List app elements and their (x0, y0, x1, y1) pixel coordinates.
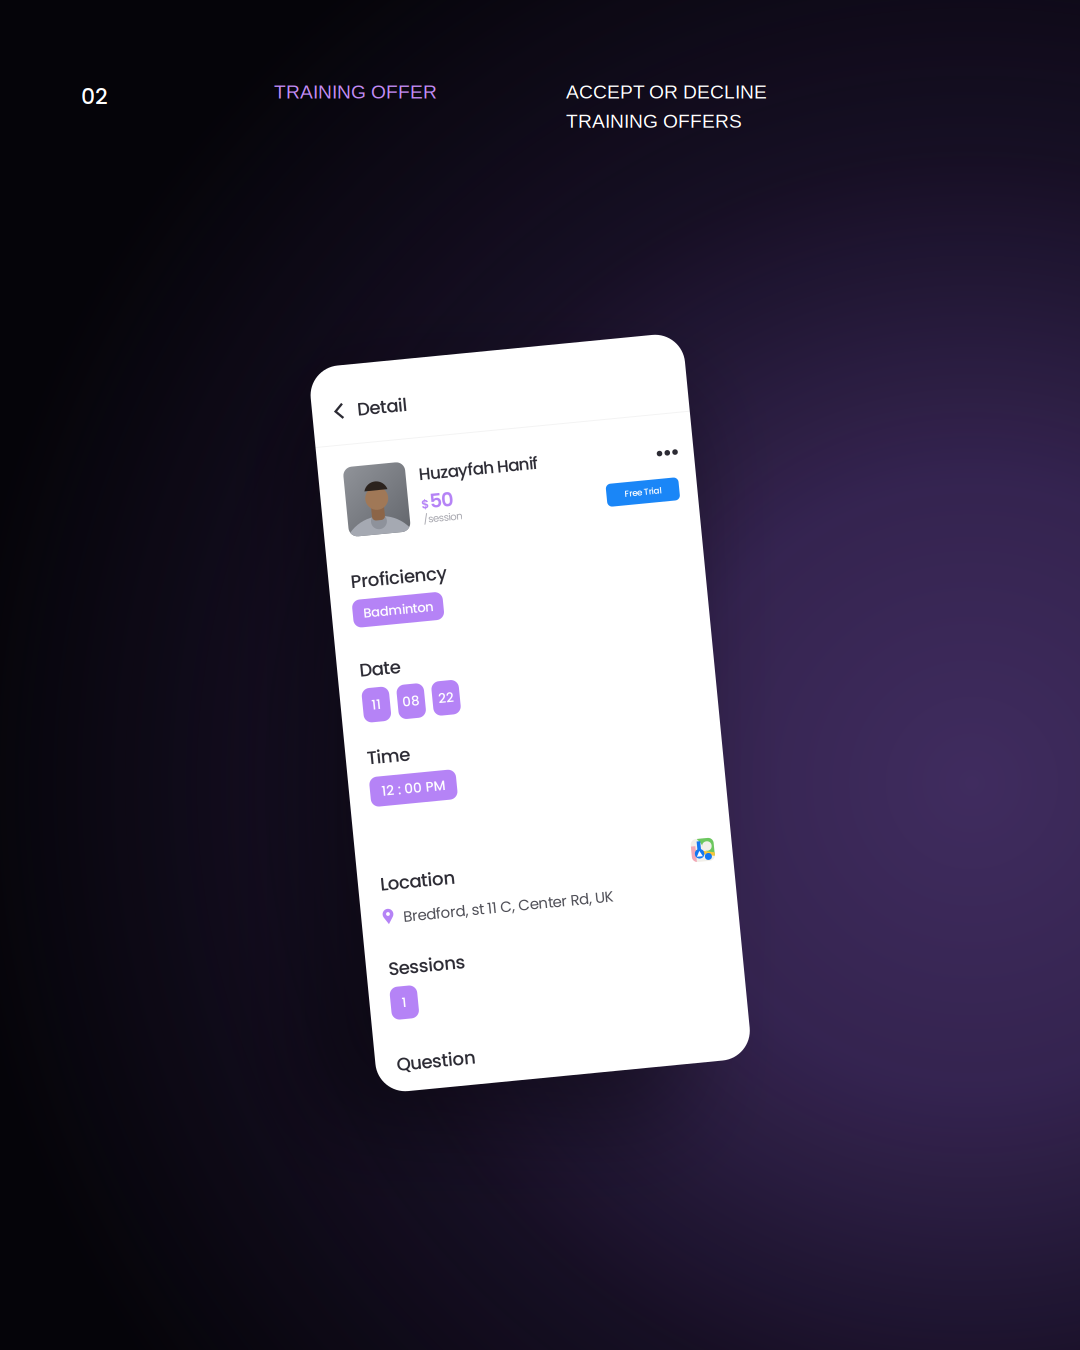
button[interactable]: Free Trial (627, 492, 700, 515)
button[interactable]: Open in Maps (677, 854, 700, 877)
staticText: Free Trial (645, 498, 682, 510)
staticText: 02 (81, 81, 108, 112)
staticText: 08 (404, 680, 422, 699)
staticText: Detail (387, 381, 438, 407)
button[interactable]: 22 (434, 672, 462, 707)
button[interactable]: 12 : 00 PM (363, 761, 450, 791)
button[interactable]: More options (675, 458, 708, 476)
staticText: Location (364, 856, 440, 882)
staticText: Proficiency (364, 552, 461, 578)
staticText: TRAINING OFFERS (566, 110, 742, 132)
button[interactable]: 08 (399, 672, 427, 707)
staticText: Time (363, 729, 407, 755)
staticText: 22 (440, 680, 456, 699)
staticText: Badminton (374, 588, 444, 607)
staticText: Huzayfah Hanif (442, 453, 562, 476)
staticText: Date (364, 641, 406, 667)
staticText: /session (442, 503, 481, 517)
staticText: 50 (450, 479, 474, 506)
staticText: Question (363, 1037, 443, 1063)
button[interactable]: 1 (363, 972, 391, 1005)
staticText: Sessions (364, 941, 442, 967)
button[interactable]: Badminton (363, 583, 454, 611)
staticText: Bredford, st 11 C, Center Rd, UK (384, 893, 595, 914)
staticText: ACCEPT OR DECLINE (566, 81, 767, 102)
staticText: 12 : 00 PM (375, 767, 439, 786)
button[interactable]: Back (360, 378, 438, 410)
button[interactable]: 11 (364, 672, 392, 707)
staticText: TRAINING OFFER (274, 81, 437, 102)
staticText: $ (442, 487, 450, 503)
staticText: 11 (373, 680, 383, 699)
